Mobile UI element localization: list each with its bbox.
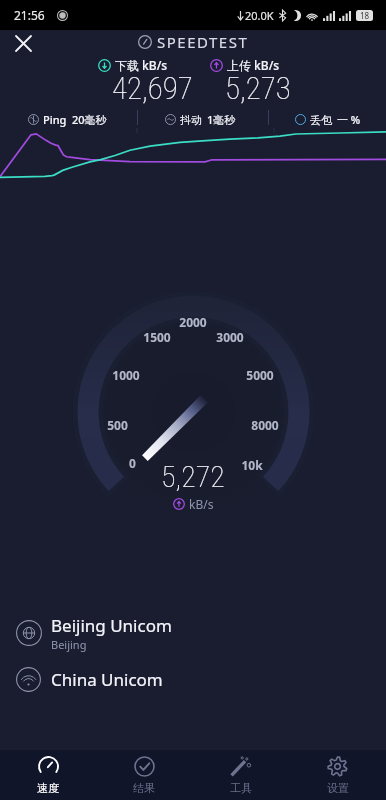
button[interactable]: 速度 <box>0 750 96 800</box>
staticText: 1500 <box>143 329 171 345</box>
staticText: 18 <box>360 10 370 21</box>
staticText: Beijing Unicom <box>51 614 172 637</box>
button[interactable]: 设置 <box>289 750 386 800</box>
staticText: 工具 <box>230 781 252 795</box>
staticText: 上传 kB/s <box>227 57 280 73</box>
staticText: 3000 <box>216 329 244 345</box>
button[interactable]: Beijing Unicom <box>0 610 386 656</box>
staticText: China Unicom <box>51 668 163 691</box>
staticText: 5000 <box>246 367 274 383</box>
button[interactable]: 工具 <box>192 750 289 800</box>
staticText: 5,273 <box>225 70 291 106</box>
staticText: 42,697 <box>112 70 193 106</box>
button[interactable]: China Unicom <box>0 657 386 702</box>
staticText: 下载 kB/s <box>115 57 168 73</box>
staticText: 1毫秒 <box>207 112 236 127</box>
staticText: 20毫秒 <box>72 112 107 127</box>
staticText: 一 % <box>337 112 361 127</box>
staticText: Ping <box>43 112 67 127</box>
staticText: 500 <box>107 417 128 433</box>
staticText: 2000 <box>179 314 207 330</box>
staticText: 5,272 <box>161 459 225 494</box>
staticText: SPEEDTEST <box>157 32 249 52</box>
staticText: 抖动 <box>180 113 202 127</box>
staticText: 21:56 <box>14 7 45 23</box>
staticText: 0 <box>129 455 136 471</box>
staticText: Beijing <box>51 637 87 652</box>
button[interactable]: Close <box>8 30 38 56</box>
staticText: 1000 <box>112 367 140 383</box>
staticText: kB/s <box>189 496 214 512</box>
staticText: 20.0K <box>245 8 274 23</box>
staticText: 8000 <box>251 417 279 433</box>
staticText: 设置 <box>327 781 349 795</box>
button[interactable]: 结果 <box>96 750 192 800</box>
staticText: 丢包 <box>310 113 332 127</box>
staticText: 结果 <box>133 781 155 795</box>
staticText: 速度 <box>37 781 59 795</box>
staticText: 10k <box>241 457 263 473</box>
